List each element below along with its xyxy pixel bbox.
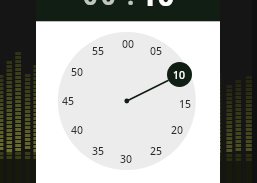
button[interactable]: 25	[145, 144, 167, 158]
staticText: 30	[120, 152, 133, 166]
button[interactable]: 35	[87, 144, 109, 158]
button[interactable]: 00	[117, 37, 139, 51]
staticText: 45	[62, 94, 75, 108]
button[interactable]: 05	[145, 44, 167, 58]
staticText: 10	[140, 0, 175, 15]
staticText: 40	[71, 123, 84, 137]
button[interactable]: 10	[167, 62, 192, 87]
button[interactable]: 45	[57, 94, 79, 108]
button[interactable]: 50	[66, 65, 88, 79]
button[interactable]: 55	[87, 44, 109, 58]
staticText: 55	[92, 44, 105, 58]
staticText: 50	[71, 65, 84, 79]
staticText: 20	[171, 123, 184, 137]
staticText: 25	[150, 144, 163, 158]
staticText: 00	[122, 37, 135, 51]
button[interactable]: 00	[81, 0, 121, 13]
button[interactable]: 10	[127, 0, 187, 15]
staticText: 10	[173, 68, 186, 82]
staticText: 35	[92, 144, 105, 158]
staticText: 15	[179, 97, 192, 111]
staticText: 00	[83, 0, 120, 13]
button[interactable]: 30	[115, 152, 137, 166]
staticText: 05	[150, 44, 163, 58]
button[interactable]: 40	[66, 123, 88, 137]
button[interactable]: 20	[166, 123, 188, 137]
staticText: :	[127, 0, 135, 13]
button[interactable]: 15	[174, 97, 196, 111]
